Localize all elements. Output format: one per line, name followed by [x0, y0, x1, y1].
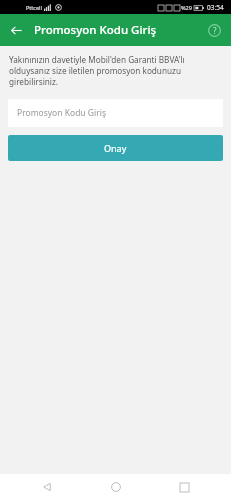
button[interactable]: Recents	[162, 474, 206, 500]
staticText: Pttcell	[26, 4, 42, 11]
staticText: Promosyon Kodu Giriş	[17, 107, 106, 119]
staticText: Yakınınızın davetiyle Mobil'den Garanti …	[9, 54, 222, 87]
staticText: %29	[181, 4, 192, 11]
staticText: Onay	[104, 142, 127, 154]
button[interactable]: Back	[4, 18, 28, 42]
staticText: ?	[213, 25, 217, 36]
button[interactable]: Promosyon Kodu Giriş	[8, 99, 223, 127]
button[interactable]: Help	[202, 18, 226, 42]
button[interactable]: Home	[94, 474, 138, 500]
staticText: Promosyon Kodu Giriş	[34, 22, 157, 38]
staticText: 03:54	[207, 3, 224, 12]
button[interactable]: Onay	[8, 135, 223, 161]
button[interactable]: Back	[25, 474, 69, 500]
